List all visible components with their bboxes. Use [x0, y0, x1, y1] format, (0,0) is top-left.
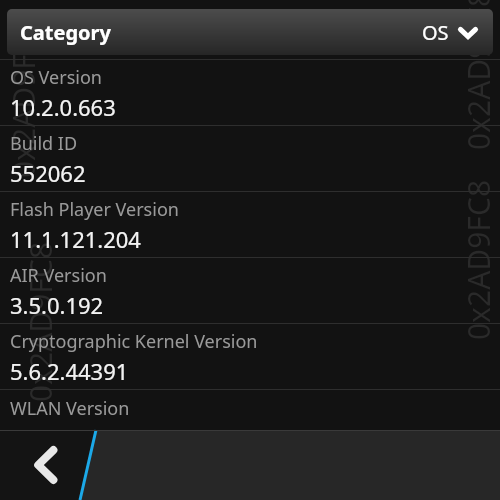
- button[interactable]: Back: [22, 442, 68, 488]
- staticText: OS Version: [10, 65, 102, 90]
- staticText: 0x2AD9FC81: [20, 237, 60, 407]
- staticText: 0x2AD9FC81: [458, 175, 498, 345]
- staticText: Cryptographic Kernel Version: [10, 329, 258, 354]
- staticText: OS: [422, 19, 449, 46]
- staticText: Flash Player Version: [10, 197, 179, 222]
- button[interactable]: AIR Version: [0, 258, 500, 323]
- button[interactable]: OS Version: [0, 60, 500, 125]
- staticText: WLAN Version: [10, 396, 130, 421]
- staticText: Category: [20, 19, 111, 46]
- button[interactable]: Build ID: [0, 126, 500, 191]
- staticText: 5.6.2.44391: [10, 356, 129, 386]
- staticText: 0x2AD9FC81: [458, 0, 498, 155]
- button[interactable]: Category: [7, 9, 493, 55]
- button[interactable]: Cryptographic Kernel Version: [0, 324, 500, 389]
- staticText: 10.2.0.663: [10, 92, 116, 122]
- staticText: 0x2AD9FC81: [3, 13, 43, 183]
- staticText: Build ID: [10, 131, 78, 156]
- staticText: AIR Version: [10, 263, 107, 288]
- button[interactable]: Flash Player Version: [0, 192, 500, 257]
- staticText: 552062: [10, 158, 86, 188]
- staticText: 3.5.0.192: [10, 290, 104, 320]
- staticText: 11.1.121.204: [10, 224, 141, 254]
